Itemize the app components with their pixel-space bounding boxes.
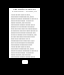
staticText: by Charles Darwin — first edition, 1859 bbox=[11, 11, 38, 13]
staticText: Lorem ipsum dolor sit amet, consectetur … bbox=[11, 46, 38, 59]
staticText: Lorem ipsum dolor sit amet, consectetur … bbox=[11, 14, 38, 46]
staticText: Lorem ipsum dolor sit amet, consectetur … bbox=[11, 45, 38, 58]
staticText: The Origin of Species bbox=[11, 8, 38, 11]
button[interactable]: Page indicator bbox=[22, 60, 28, 64]
staticText: Lorem ipsum dolor sit amet, consectetur … bbox=[11, 13, 38, 45]
